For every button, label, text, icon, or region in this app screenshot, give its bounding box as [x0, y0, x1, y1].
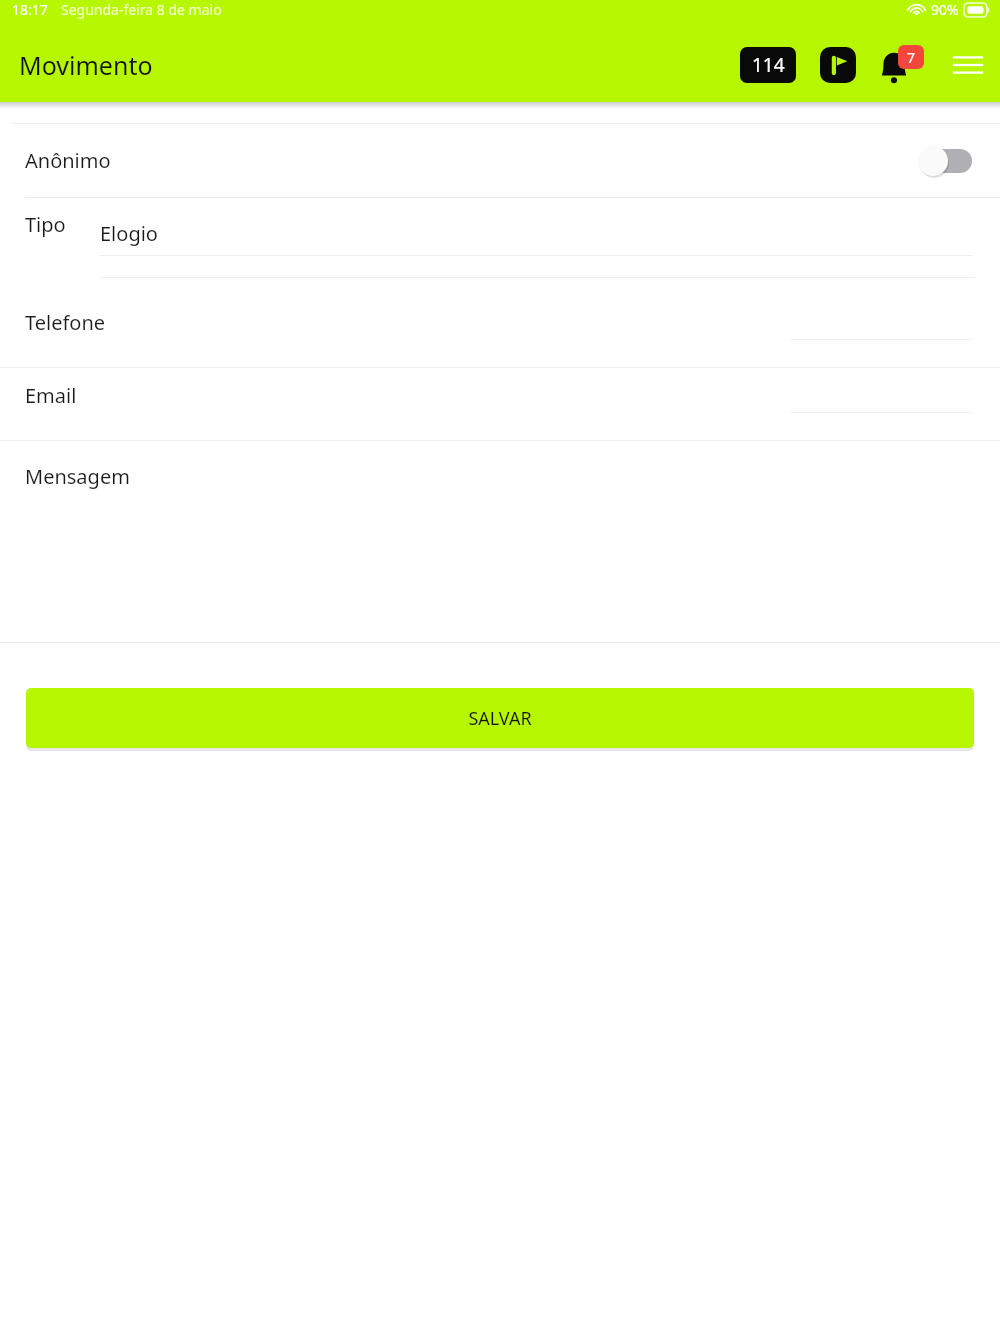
- staticText: Telefone: [25, 309, 106, 336]
- staticText: Mensagem: [25, 463, 130, 490]
- staticText: Movimento: [19, 48, 153, 82]
- staticText: 18:17: [12, 0, 48, 19]
- staticText: Tipo: [25, 211, 66, 238]
- button[interactable]: Anônimo: [0, 124, 1000, 197]
- staticText: 7: [907, 48, 916, 67]
- staticText: SALVAR: [468, 706, 532, 731]
- staticText: Email: [25, 382, 77, 409]
- button[interactable]: Menu: [950, 47, 986, 83]
- staticText: Segunda-feira 8 de maio: [61, 0, 222, 19]
- button[interactable]: SALVAR: [26, 688, 974, 748]
- button[interactable]: Notifications: [878, 45, 924, 85]
- staticText: Elogio: [100, 220, 158, 247]
- button[interactable]: Telefone: [0, 295, 1000, 368]
- staticText: Anônimo: [25, 147, 111, 174]
- button[interactable]: Tipo: [0, 198, 1000, 295]
- staticText: 90%: [931, 0, 959, 19]
- button[interactable]: Goals: [820, 47, 856, 83]
- button[interactable]: Counter 114: [740, 47, 796, 83]
- staticText: 114: [752, 52, 785, 78]
- button[interactable]: Mensagem: [0, 441, 1000, 642]
- button[interactable]: Email: [0, 368, 1000, 441]
